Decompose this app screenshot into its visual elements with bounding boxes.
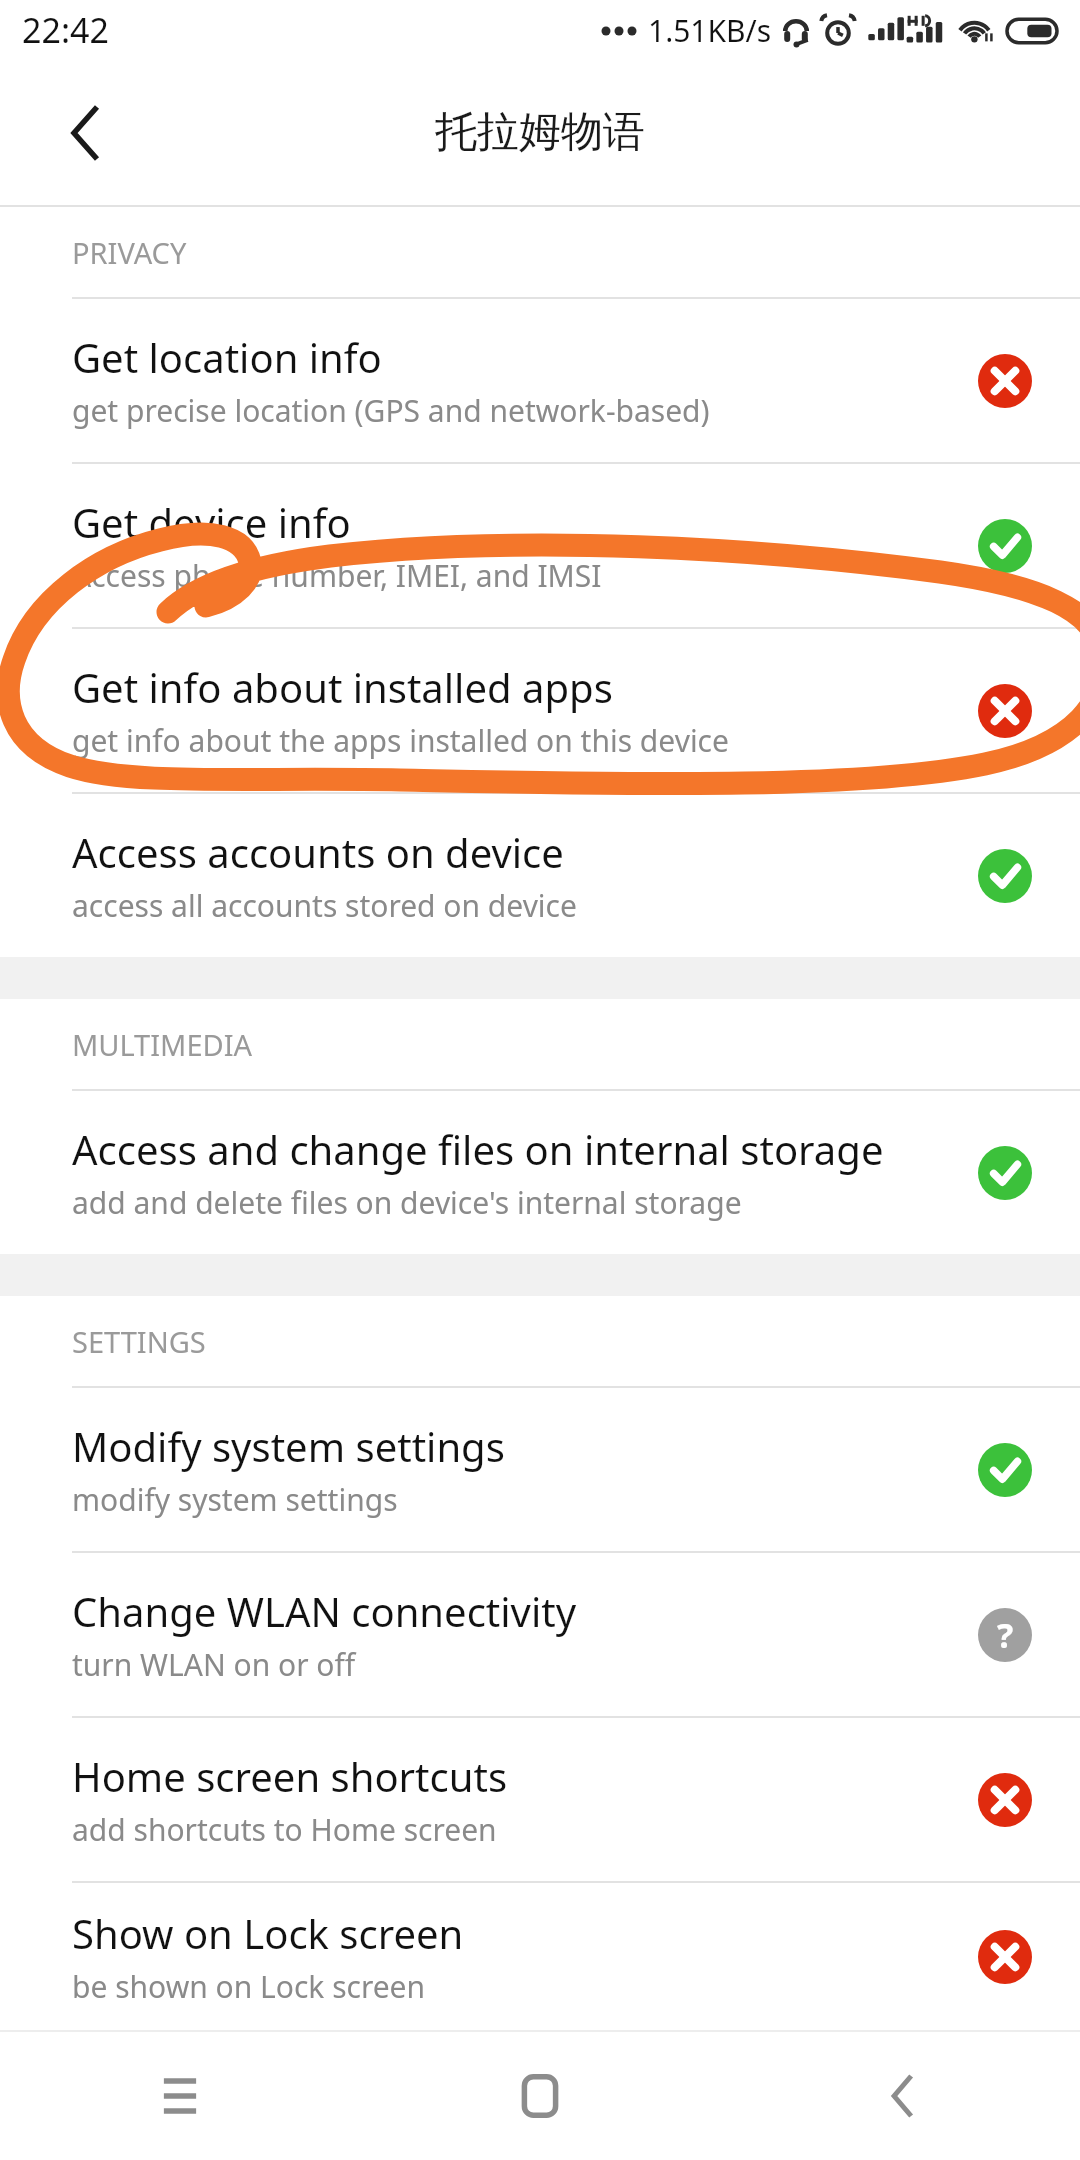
staticText: 托拉姆物语 — [435, 106, 645, 159]
staticText: access all accounts stored on device — [72, 885, 577, 926]
button[interactable]: Denied — [978, 354, 1032, 408]
staticText: Get location info — [72, 330, 382, 384]
button[interactable]: Home screen shortcuts — [0, 1718, 1080, 1881]
button[interactable]: Get device info — [0, 464, 1080, 627]
staticText: get info about the apps installed on thi… — [72, 720, 729, 761]
button[interactable]: Change WLAN connectivity — [0, 1553, 1080, 1716]
staticText: modify system settings — [72, 1479, 398, 1520]
staticText: 1.51KB/s — [648, 10, 772, 51]
button[interactable]: Back — [852, 2048, 948, 2144]
staticText: 22:42 — [22, 7, 109, 53]
button[interactable]: Home — [492, 2048, 588, 2144]
staticText: add shortcuts to Home screen — [72, 1809, 497, 1850]
staticText: Access phone number, IMEI, and IMSI — [72, 555, 602, 596]
button[interactable]: Allowed — [978, 849, 1032, 903]
button[interactable]: Back — [34, 81, 138, 185]
staticText: SETTINGS — [72, 1322, 206, 1361]
button[interactable]: Denied — [978, 1930, 1032, 1984]
button[interactable]: Access and change files on internal stor… — [0, 1091, 1080, 1254]
button[interactable]: Get info about installed apps — [0, 629, 1080, 792]
button[interactable]: Modify system settings — [0, 1388, 1080, 1551]
staticText: be shown on Lock screen — [72, 1966, 426, 2007]
staticText: Get device info — [72, 495, 351, 549]
button[interactable]: Access accounts on device — [0, 794, 1080, 957]
button[interactable]: Allowed — [978, 1146, 1032, 1200]
staticText: Show on Lock screen — [72, 1906, 464, 1960]
staticText: turn WLAN on or off — [72, 1644, 356, 1685]
staticText: Get info about installed apps — [72, 660, 613, 714]
button[interactable]: Allowed — [978, 1443, 1032, 1497]
button[interactable]: Show on Lock screen — [0, 1883, 1080, 2030]
button[interactable]: Denied — [978, 1773, 1032, 1827]
staticText: Access accounts on device — [72, 825, 564, 879]
staticText: Home screen shortcuts — [72, 1749, 508, 1803]
button[interactable]: Denied — [978, 684, 1032, 738]
button[interactable]: Get location info — [0, 299, 1080, 462]
staticText: Modify system settings — [72, 1419, 505, 1473]
staticText: PRIVACY — [72, 233, 187, 272]
staticText: add and delete files on device's interna… — [72, 1182, 742, 1223]
staticText: MULTIMEDIA — [72, 1025, 253, 1064]
staticText: Access and change files on internal stor… — [72, 1122, 884, 1176]
button[interactable]: Recent apps — [132, 2048, 228, 2144]
staticText: ? — [997, 1612, 1014, 1658]
staticText: get precise location (GPS and network-ba… — [72, 390, 710, 431]
button[interactable]: Allowed — [978, 519, 1032, 573]
button[interactable]: Ask — [978, 1608, 1032, 1662]
staticText: Change WLAN connectivity — [72, 1584, 577, 1638]
